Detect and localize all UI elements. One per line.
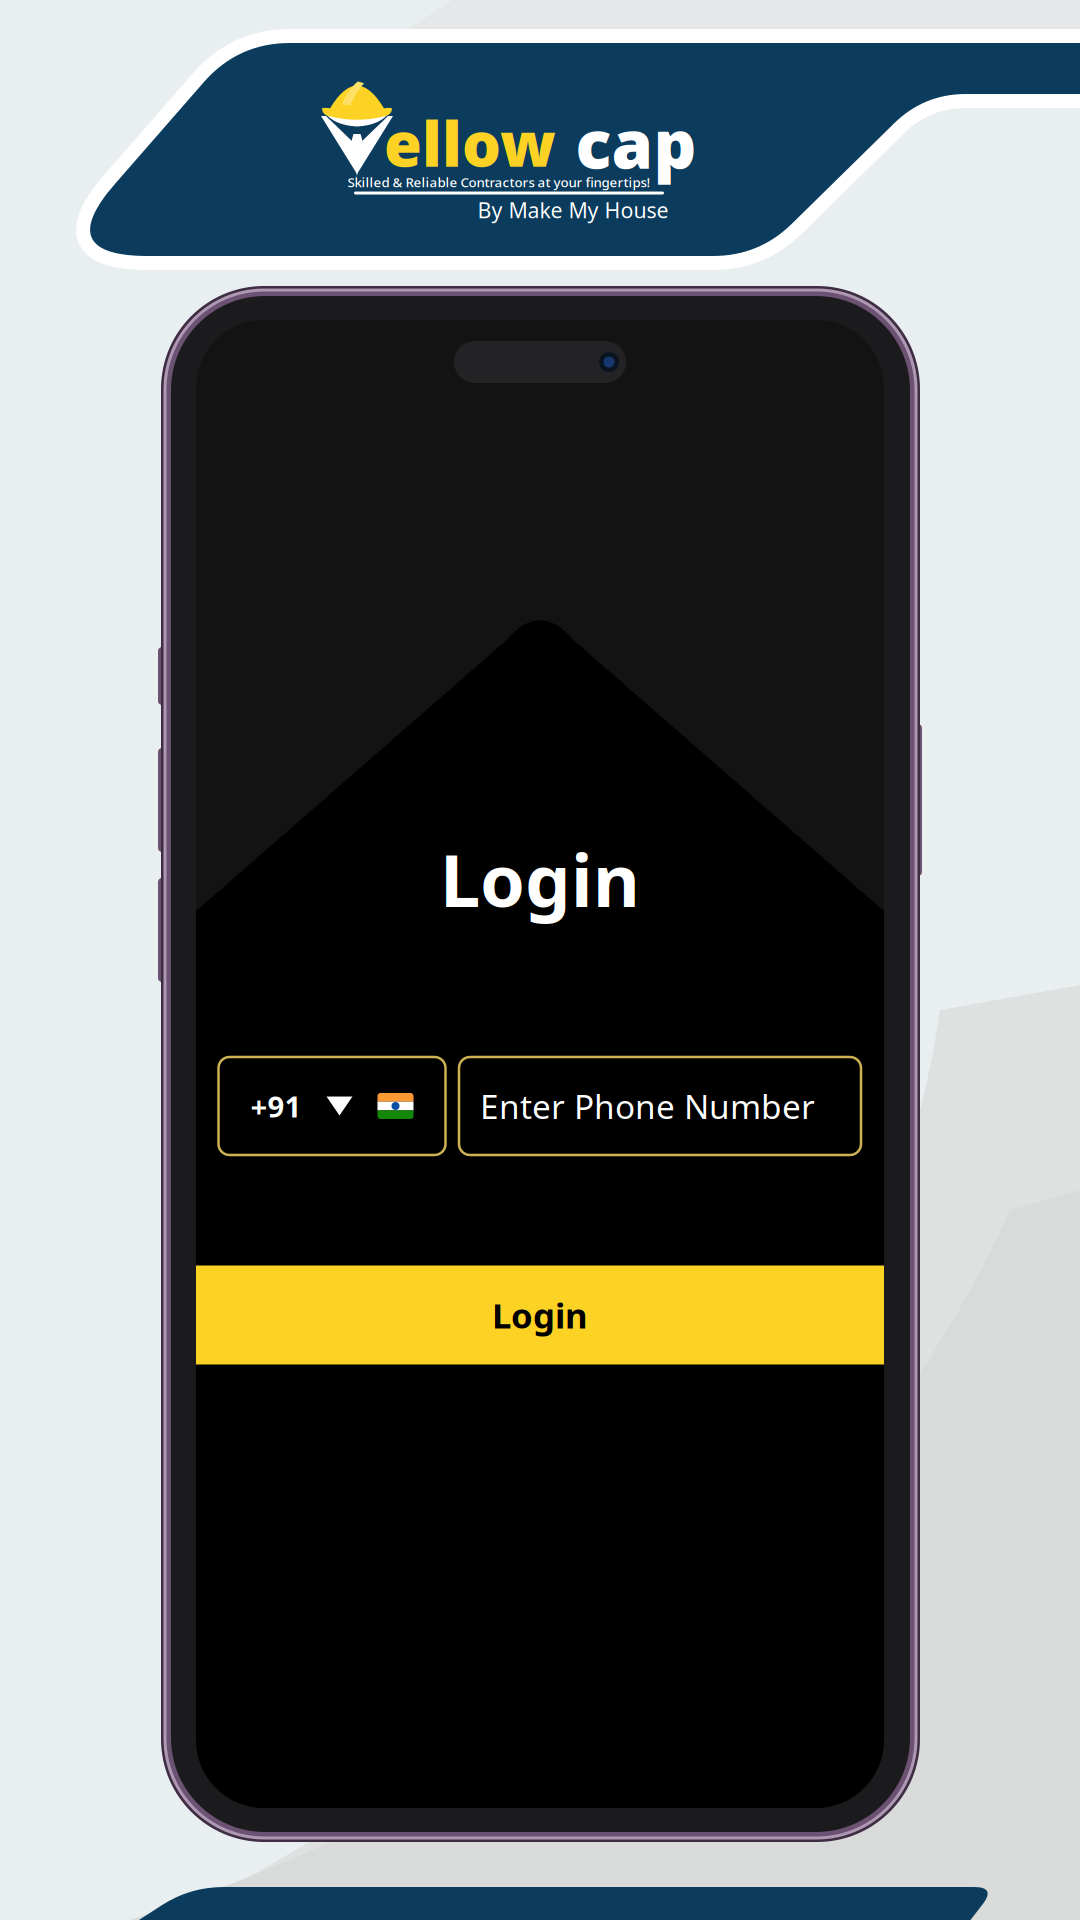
staticText: Skilled & Reliable Contractors at your f… [347, 173, 650, 191]
staticText: Login [440, 831, 640, 927]
staticText: cap [575, 99, 696, 187]
button[interactable]: +91 [218, 1057, 445, 1155]
staticText: ellow [384, 102, 556, 184]
staticText: By Make My House [477, 196, 668, 224]
button[interactable]: Login [196, 1265, 884, 1364]
button[interactable]: Enter Phone Number [459, 1057, 861, 1155]
staticText: Enter Phone Number [480, 1084, 815, 1128]
staticText: +91 [250, 1086, 301, 1125]
staticText: Login [492, 1292, 588, 1338]
